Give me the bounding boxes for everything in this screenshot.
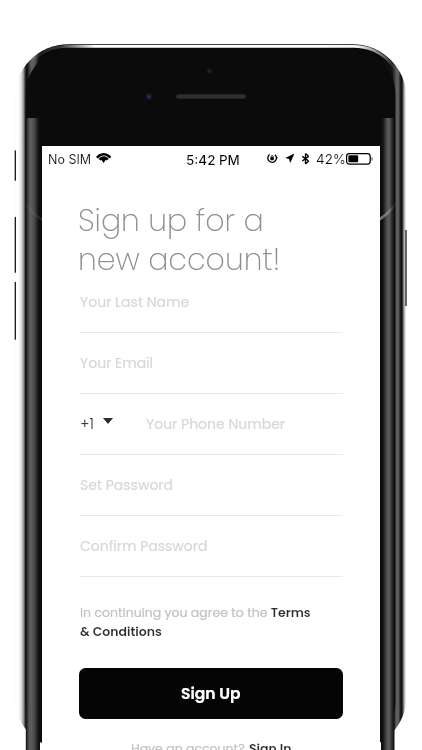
button[interactable]: Select country code, currently +1 xyxy=(80,405,113,437)
staticText: 42% xyxy=(316,151,346,167)
staticText: Confirm Password xyxy=(80,536,208,556)
staticText: Your Phone Number xyxy=(146,414,286,434)
staticText: Set Password xyxy=(80,475,174,495)
button[interactable]: Sign In xyxy=(249,740,292,750)
button[interactable]: Set Password xyxy=(80,466,343,498)
button[interactable]: Your Last Name xyxy=(80,283,343,315)
button[interactable]: Confirm Password xyxy=(80,527,343,559)
staticText: Your Last Name xyxy=(80,292,190,312)
button[interactable]: In continuing you agree to the Terms & C… xyxy=(80,604,347,640)
staticText: No SIM xyxy=(48,152,92,167)
staticText: 5:42 PM xyxy=(186,152,240,168)
staticText: Sign Up xyxy=(181,683,241,705)
staticText: Have an account? xyxy=(131,740,249,750)
staticText: Your Email xyxy=(80,353,154,373)
staticText: Sign up for a new account! xyxy=(78,200,281,280)
staticText: +1 xyxy=(80,414,95,434)
button[interactable]: Your Email xyxy=(80,344,343,376)
button[interactable]: Sign Up xyxy=(79,668,343,719)
staticText: In continuing you agree to the Terms & C… xyxy=(80,604,311,640)
